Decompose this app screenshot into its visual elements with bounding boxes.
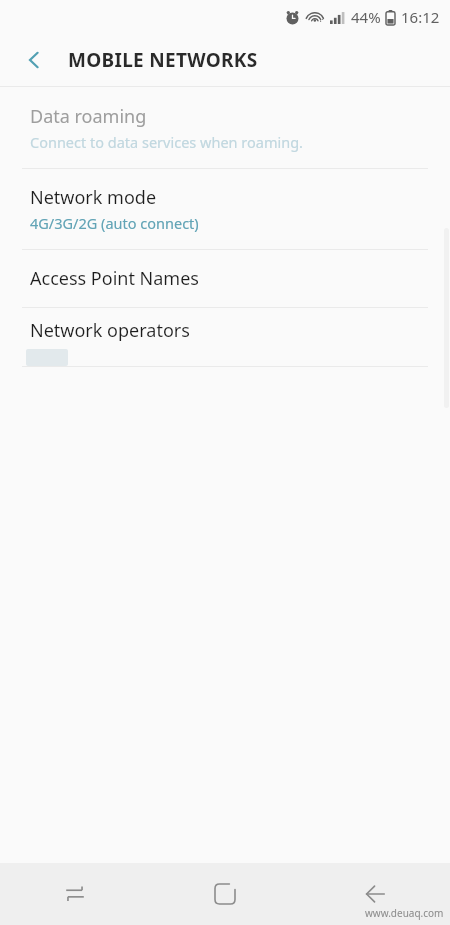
button[interactable]: Network operators [0, 308, 450, 366]
staticText: Network mode [30, 185, 157, 210]
button[interactable]: Recents [0, 863, 150, 925]
button[interactable]: Back [300, 863, 450, 925]
staticText: 4G/3G/2G (auto connect) [30, 213, 199, 233]
staticText: 44% [351, 7, 381, 27]
button[interactable]: Back [12, 38, 56, 82]
staticText: www.deuaq.com [365, 906, 444, 920]
staticText: Access Point Names [30, 266, 199, 291]
button[interactable]: Access Point Names [0, 250, 450, 307]
staticText: Data roaming [30, 104, 147, 129]
button[interactable]: Network mode [0, 169, 450, 249]
staticText: MOBILE NETWORKS [68, 47, 258, 73]
staticText: 16:12 [401, 7, 440, 27]
button[interactable]: Data roaming [0, 87, 450, 168]
staticText: Network operators [30, 318, 190, 343]
button[interactable]: Home [150, 863, 300, 925]
staticText: Connect to data services when roaming. [30, 132, 303, 152]
